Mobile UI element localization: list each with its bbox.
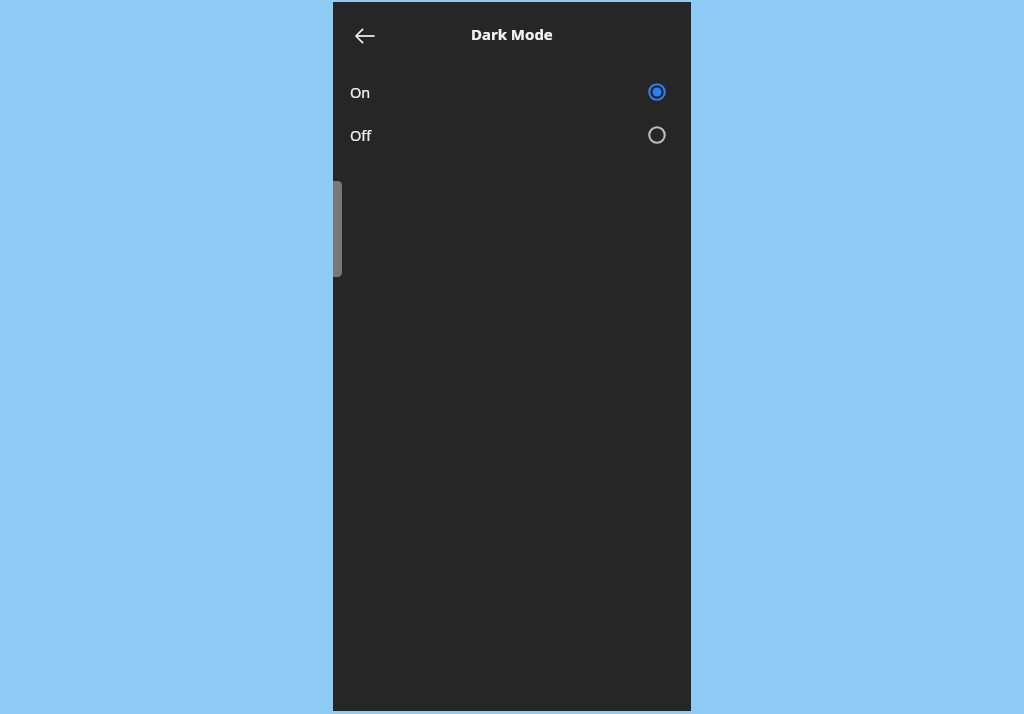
staticText: Dark Mode	[471, 24, 553, 44]
staticText: Off	[350, 125, 372, 145]
staticText: On	[350, 82, 371, 102]
button[interactable]: Back	[341, 12, 389, 60]
button[interactable]: Open navigation drawer	[333, 181, 342, 277]
button[interactable]: Off	[333, 113, 691, 156]
button[interactable]: On	[333, 70, 691, 113]
